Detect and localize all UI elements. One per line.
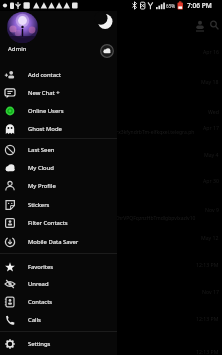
staticText: Filter Contacts (28, 219, 68, 227)
staticText: May 4 (204, 151, 219, 158)
staticText: Settings (28, 340, 51, 348)
staticText: New Chat + (28, 89, 60, 97)
staticText: 12:13 PM (196, 315, 219, 322)
staticText: Ghost Mode (28, 125, 62, 133)
staticText: Wed (208, 108, 219, 115)
button[interactable]: Calls (0, 311, 117, 329)
button[interactable] (7, 12, 38, 43)
staticText: Apr 16 (203, 48, 219, 55)
staticText: Apr 17 (203, 124, 219, 131)
button[interactable]: My Profile (0, 177, 117, 195)
button[interactable]: Last Seen (0, 141, 117, 159)
staticText: 7:06 PM (187, 1, 212, 10)
staticText: Unread (28, 280, 49, 288)
button[interactable]: Stickers (0, 196, 117, 214)
button[interactable]: Filter Contacts (0, 214, 117, 232)
staticText: Apr 30 (203, 177, 219, 184)
button[interactable] (100, 44, 114, 58)
button[interactable]: Unread (0, 275, 117, 293)
button[interactable]: Favorites (0, 258, 117, 276)
staticText: Contacts (28, 298, 53, 306)
button[interactable]: Contacts (0, 293, 117, 311)
button[interactable]: My Cloud (0, 159, 117, 177)
staticText: 12:13 PM (196, 261, 219, 268)
staticText: Nov 9 (205, 206, 219, 213)
staticText: Online Users (28, 107, 64, 115)
staticText: Last Seen (28, 146, 55, 154)
button[interactable]: New Chat + (0, 84, 117, 102)
button[interactable]: Ghost Mode (0, 120, 117, 138)
button[interactable]: Mobile Data Saver (0, 233, 117, 251)
staticText: Admin (8, 45, 27, 53)
staticText: My Profile (28, 182, 56, 190)
staticText: Favorites (28, 263, 54, 271)
staticText: 65% (166, 3, 176, 9)
staticText: May 18 (201, 78, 219, 85)
button[interactable]: Add contact (0, 66, 117, 84)
button[interactable]: Online Users (0, 102, 117, 120)
staticText: qrx3kfyndrbTm-elfkqxei.telegra.ph (113, 129, 195, 136)
button[interactable] (96, 12, 115, 31)
staticText: May 12 (201, 234, 219, 241)
staticText: 12:13 PM (196, 348, 219, 355)
staticText: Nov 17 (202, 288, 219, 295)
staticText: ChrVPQFqznzHbTmdlgbpvlxazlv10 (115, 215, 196, 222)
staticText: My Cloud (28, 164, 54, 172)
button[interactable]: Settings (0, 335, 117, 353)
staticText: Calls (28, 316, 41, 324)
staticText: Mobile Data Saver (28, 238, 79, 246)
staticText: Add contact (28, 71, 61, 79)
staticText: Stickers (28, 201, 50, 209)
